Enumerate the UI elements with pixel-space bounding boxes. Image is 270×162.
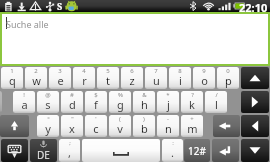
button[interactable]: Enter <box>212 139 239 162</box>
staticText: l <box>215 97 218 112</box>
staticText: k <box>189 97 195 112</box>
button[interactable]: * <box>157 91 179 113</box>
staticText: e <box>57 73 64 88</box>
button[interactable]: Move up <box>241 67 269 89</box>
staticText: j <box>167 97 170 112</box>
staticText: h <box>141 97 148 112</box>
staticText: x <box>69 121 75 136</box>
button[interactable]: 7 <box>145 67 167 89</box>
staticText: b <box>141 121 148 136</box>
staticText: 8 <box>178 67 182 75</box>
staticText: y <box>45 121 51 136</box>
button[interactable]: Suche alle <box>2 14 268 64</box>
button[interactable]: 5 <box>97 67 119 89</box>
button[interactable]: 8 <box>169 67 191 89</box>
button[interactable]: Move left <box>241 115 269 137</box>
staticText: 1 <box>10 67 14 75</box>
button[interactable]: 1 <box>1 67 23 89</box>
button[interactable]: / <box>205 91 227 113</box>
staticText: p <box>225 73 232 88</box>
staticText: 12# <box>188 144 206 158</box>
button[interactable]: 3 <box>49 67 71 89</box>
staticText: o <box>201 73 208 88</box>
staticText: s <box>45 97 51 112</box>
staticText: 0 <box>226 67 230 75</box>
button[interactable]: ? <box>181 91 203 113</box>
staticText: # <box>70 91 74 99</box>
staticText: 9 <box>202 67 206 75</box>
button[interactable]: ) <box>133 115 155 137</box>
staticText: ' <box>95 115 97 123</box>
button[interactable]: + <box>181 115 203 137</box>
staticText: + <box>190 115 194 123</box>
button[interactable]: ! <box>13 91 35 113</box>
staticText: v <box>117 121 123 136</box>
staticText: ! <box>23 91 25 99</box>
button[interactable]: 0 <box>217 67 239 89</box>
staticText: % <box>118 91 123 99</box>
staticText: ) <box>143 115 145 123</box>
button[interactable]: ; <box>59 139 80 162</box>
staticText: r <box>82 73 87 88</box>
button[interactable]: ' <box>85 115 107 137</box>
button[interactable]: Numbers and symbols <box>184 139 210 162</box>
staticText: - <box>167 115 169 123</box>
button[interactable]: Shift <box>0 115 29 137</box>
staticText: 2 <box>34 67 38 75</box>
button[interactable]: 2 <box>25 67 47 89</box>
staticText: 5 <box>106 67 110 75</box>
staticText: m <box>187 121 198 136</box>
staticText: * <box>166 91 170 99</box>
staticText: & <box>142 91 147 99</box>
staticText: 3 <box>58 67 62 75</box>
staticText: ? <box>191 91 194 99</box>
staticText: ° <box>47 115 50 123</box>
staticText: @ <box>45 91 51 99</box>
staticText: c <box>93 121 99 136</box>
staticText: a <box>21 97 28 112</box>
button[interactable]: ° <box>37 115 59 137</box>
button[interactable]: Hide keyboard <box>241 139 269 162</box>
button[interactable]: Keyboard settings <box>1 139 28 162</box>
staticText: g <box>117 97 124 112</box>
button[interactable]: 9 <box>193 67 215 89</box>
staticText: d <box>69 97 76 112</box>
staticText: n <box>165 121 172 136</box>
button[interactable]: # <box>61 91 83 113</box>
staticText: 6 <box>130 67 134 75</box>
staticText: f <box>94 97 98 112</box>
staticText: DE <box>37 148 50 162</box>
button[interactable]: : <box>162 139 183 162</box>
button[interactable]: Backspace <box>213 115 240 137</box>
staticText: ( <box>119 115 121 123</box>
button[interactable]: @ <box>37 91 59 113</box>
staticText: Suche alle <box>6 18 49 30</box>
staticText: / <box>215 91 218 99</box>
staticText: q <box>9 73 16 88</box>
staticText: 22:10 <box>239 0 268 12</box>
button[interactable]: ( <box>109 115 131 137</box>
staticText: ; <box>69 139 71 147</box>
staticText: . <box>171 145 174 160</box>
button[interactable]: $ <box>85 91 107 113</box>
button[interactable]: 4 <box>73 67 95 89</box>
staticText: i <box>179 73 182 88</box>
button[interactable]: & <box>133 91 155 113</box>
button[interactable]: Voice input, German <box>30 139 57 162</box>
staticText: , <box>68 145 71 160</box>
staticText: 7 <box>154 67 158 75</box>
staticText: S <box>57 0 63 12</box>
staticText: 4 <box>82 67 86 75</box>
button[interactable]: % <box>109 91 131 113</box>
staticText: t <box>106 73 110 88</box>
staticText: u <box>153 73 160 88</box>
staticText: w <box>32 73 41 88</box>
button[interactable]: Space <box>82 139 160 162</box>
button[interactable]: " <box>61 115 83 137</box>
staticText: : <box>172 139 174 147</box>
staticText: $ <box>94 91 98 99</box>
button[interactable]: 6 <box>121 67 143 89</box>
button[interactable] <box>0 91 2 113</box>
button[interactable]: - <box>157 115 179 137</box>
button[interactable]: Move right <box>241 91 269 113</box>
